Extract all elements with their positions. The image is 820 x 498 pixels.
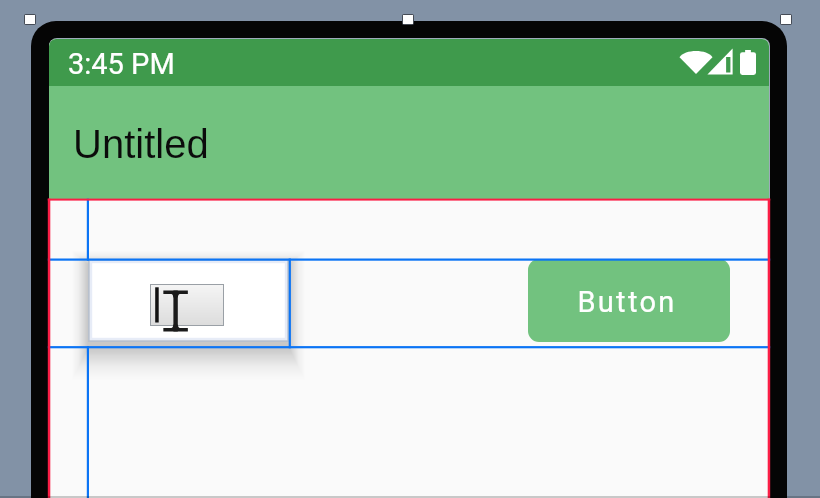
other: Wi-Fi [679,50,713,74]
staticText: Button [577,285,677,319]
other: Battery [740,50,756,75]
other: Mobile signal [707,48,733,75]
button[interactable]: Button [528,259,730,342]
staticText: 3:45 PM [68,47,175,81]
staticText: Untitled [73,122,209,167]
button[interactable]: Text field [88,259,289,342]
